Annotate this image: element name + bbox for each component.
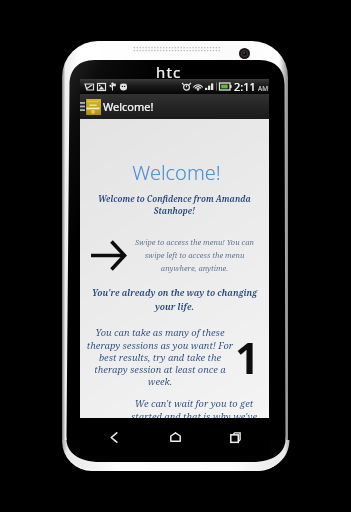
staticText: 1: [235, 328, 260, 387]
staticText: AM: [258, 84, 269, 93]
button[interactable]: Recent apps: [209, 418, 261, 456]
staticText: Welcome to Confidence from Amanda Stanho…: [97, 193, 252, 216]
staticText: 2:11: [234, 79, 256, 94]
staticText: You're already on the way to changing yo…: [88, 287, 261, 312]
button[interactable]: App icon: [85, 99, 101, 115]
button[interactable]: Home: [149, 418, 201, 456]
staticText: You can take as many of these therapy se…: [84, 326, 236, 387]
staticText: Welcome!: [103, 99, 154, 114]
button[interactable]: Open navigation menu: [80, 94, 85, 119]
staticText: Swipe to access the menu! You can swipe …: [135, 237, 254, 273]
staticText: Welcome!: [82, 159, 271, 186]
staticText: htc: [156, 62, 182, 82]
staticText: We can't wait for you to get started and…: [131, 397, 257, 422]
button[interactable]: Back: [88, 418, 140, 456]
